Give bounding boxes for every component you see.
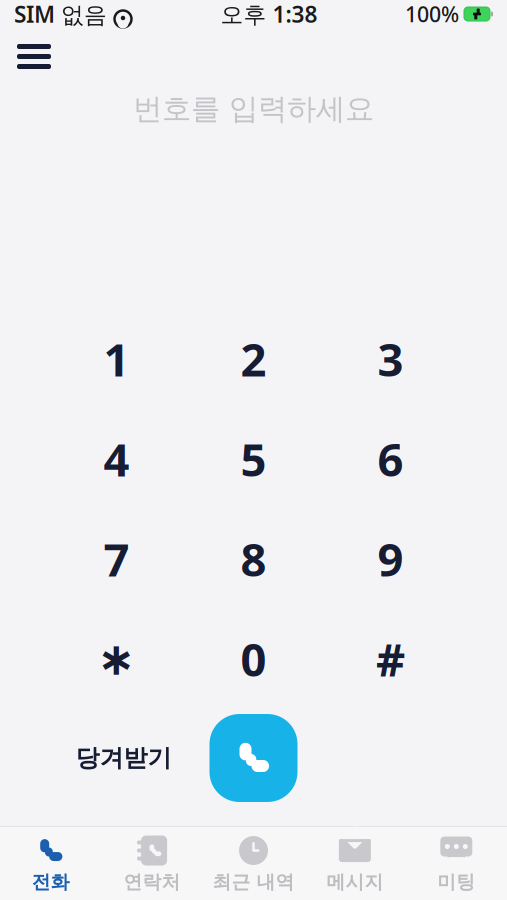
staticText: 당겨받기 — [75, 743, 171, 773]
staticText: 번호를 입력하세요 — [133, 91, 374, 127]
button[interactable]: 통화 — [188, 712, 318, 804]
button[interactable]: 연락처 — [101, 827, 203, 900]
button[interactable]: # — [322, 614, 459, 704]
button[interactable]: 1 — [48, 314, 185, 404]
button[interactable]: 6 — [322, 414, 459, 504]
staticText: 연락처 — [124, 870, 181, 893]
button[interactable]: 당겨받기 — [58, 728, 188, 788]
staticText: 4 — [103, 429, 129, 489]
button[interactable]: 전화 — [0, 827, 101, 900]
button[interactable]: 9 — [322, 514, 459, 604]
staticText: 6 — [377, 429, 403, 489]
staticText: 9 — [377, 529, 403, 589]
button[interactable]: 2 — [185, 314, 322, 404]
button[interactable]: 미팅 — [406, 827, 507, 900]
staticText: 메시지 — [326, 870, 383, 893]
button[interactable]: 7 — [48, 514, 185, 604]
button[interactable]: 4 — [48, 414, 185, 504]
staticText: 5 — [240, 429, 266, 489]
button[interactable]: 3 — [322, 314, 459, 404]
staticText: 0 — [240, 629, 266, 689]
staticText: 3 — [377, 329, 403, 389]
button[interactable]: 8 — [185, 514, 322, 604]
staticText: 1 — [103, 329, 129, 389]
staticText: 최근 내역 — [212, 870, 294, 893]
button[interactable]: 메시지 — [304, 827, 406, 900]
button[interactable]: 최근 내역 — [203, 827, 304, 900]
button[interactable]: 0 — [185, 614, 322, 704]
staticText: 미팅 — [437, 870, 475, 893]
staticText: 전화 — [32, 870, 70, 893]
staticText: # — [376, 629, 405, 689]
staticText: SIM 없음 — [14, 0, 107, 29]
staticText: ∗ — [97, 633, 135, 685]
staticText: 7 — [103, 529, 129, 589]
button[interactable]: ∗ — [48, 614, 185, 704]
button[interactable]: 메뉴 — [5, 32, 63, 81]
staticText: 100% — [405, 0, 459, 28]
staticText: 8 — [240, 529, 266, 589]
staticText: 오후 1:38 — [220, 0, 317, 29]
staticText: 2 — [240, 329, 266, 389]
button[interactable]: 5 — [185, 414, 322, 504]
